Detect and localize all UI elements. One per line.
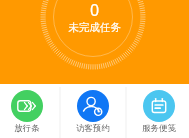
button[interactable]: 放行条 [0, 85, 57, 134]
staticText: 访客预约 [63, 123, 123, 134]
staticText: 未完成任务 [0, 21, 189, 34]
staticText: 放行条 [0, 123, 57, 134]
other: 访客预约 [77, 90, 109, 122]
button[interactable]: 服务便笺 [129, 85, 189, 134]
button[interactable]: 访客预约 [63, 85, 123, 134]
other: 放行条 [11, 90, 43, 122]
other: 服务便笺 [143, 90, 175, 122]
staticText: 服务便笺 [129, 123, 189, 134]
staticText: 0 [0, 0, 189, 21]
